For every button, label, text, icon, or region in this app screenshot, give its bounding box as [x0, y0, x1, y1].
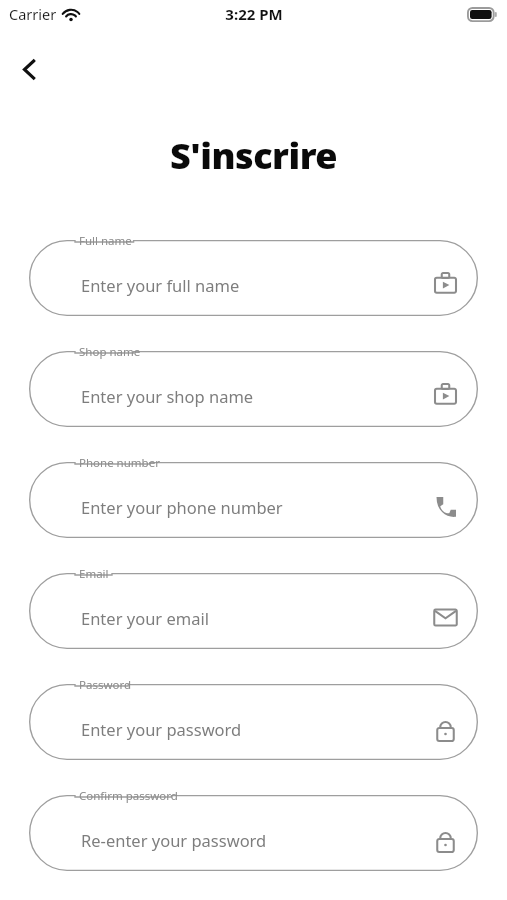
- staticText: 3:22 PM: [225, 4, 283, 24]
- staticText: Confirm password: [79, 788, 178, 804]
- staticText: Enter your phone number: [81, 496, 283, 518]
- button[interactable]: Lock: [428, 822, 462, 856]
- staticText: Enter your email: [81, 607, 209, 629]
- staticText: Password: [79, 677, 132, 693]
- staticText: Re-enter your password: [81, 829, 267, 851]
- button[interactable]: Phone: [428, 489, 462, 523]
- staticText: Full name: [79, 233, 132, 249]
- button[interactable]: Phone number: [29, 462, 478, 538]
- button[interactable]: Briefcase: [428, 267, 462, 301]
- button[interactable]: Email: [428, 600, 462, 634]
- button[interactable]: Shop name: [29, 351, 478, 427]
- button[interactable]: Email: [29, 573, 478, 649]
- staticText: Enter your password: [81, 718, 242, 740]
- button[interactable]: Full name: [29, 240, 478, 316]
- button[interactable]: Lock: [428, 711, 462, 745]
- button[interactable]: Briefcase: [428, 378, 462, 412]
- staticText: S'inscrire: [0, 131, 507, 180]
- staticText: Enter your full name: [81, 274, 240, 296]
- staticText: Email: [79, 566, 109, 582]
- staticText: Carrier: [9, 4, 57, 24]
- button[interactable]: Back: [9, 49, 49, 89]
- staticText: Shop name: [79, 344, 141, 360]
- button[interactable]: Confirm password: [29, 795, 478, 871]
- staticText: Enter your shop name: [81, 385, 254, 407]
- staticText: Phone number: [79, 455, 160, 471]
- button[interactable]: Password: [29, 684, 478, 760]
